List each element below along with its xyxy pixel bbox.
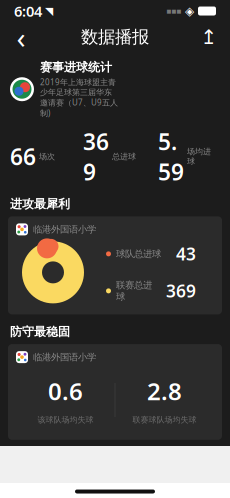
- button[interactable]: Share: [192, 22, 226, 52]
- staticText: 369: [83, 126, 109, 187]
- staticText: 2.8: [147, 375, 182, 407]
- button[interactable]: Back: [4, 22, 38, 52]
- staticText: 联赛总进球: [116, 279, 152, 302]
- staticText: ↥: [200, 26, 217, 48]
- staticText: 43: [176, 242, 196, 265]
- staticText: ◥: [42, 5, 53, 17]
- staticText: 10: [120, 489, 142, 498]
- staticText: ‹: [16, 17, 25, 56]
- staticText: 防守最稳固: [10, 324, 70, 339]
- staticText: 该球队场均失球: [37, 415, 93, 425]
- staticText: ▪▪▪: [166, 6, 181, 16]
- staticText: ◈: [185, 4, 194, 18]
- staticText: 赛事进球统计: [40, 60, 112, 75]
- staticText: 球队总进球: [116, 248, 161, 260]
- staticText: 5.59: [158, 126, 184, 187]
- staticText: 6:04: [14, 1, 42, 21]
- staticText: 66: [10, 141, 36, 172]
- staticText: 总进球: [112, 152, 136, 161]
- staticText: 联赛球队场均失球: [132, 415, 196, 425]
- staticText: 1: [85, 489, 96, 498]
- staticText: 临港外国语小学: [33, 351, 96, 363]
- staticText: 临港外国语小学: [33, 224, 96, 235]
- staticText: 2019年上海球盟主青少年足球第三届华东邀请赛（U7、U9五人制): [40, 77, 118, 118]
- staticText: 数据播报: [81, 26, 149, 48]
- staticText: 场均进球: [187, 147, 211, 166]
- staticText: 0.6: [48, 375, 83, 407]
- staticText: 场次: [39, 152, 55, 161]
- staticText: 进攻最犀利: [10, 197, 70, 211]
- staticText: 369: [166, 279, 196, 302]
